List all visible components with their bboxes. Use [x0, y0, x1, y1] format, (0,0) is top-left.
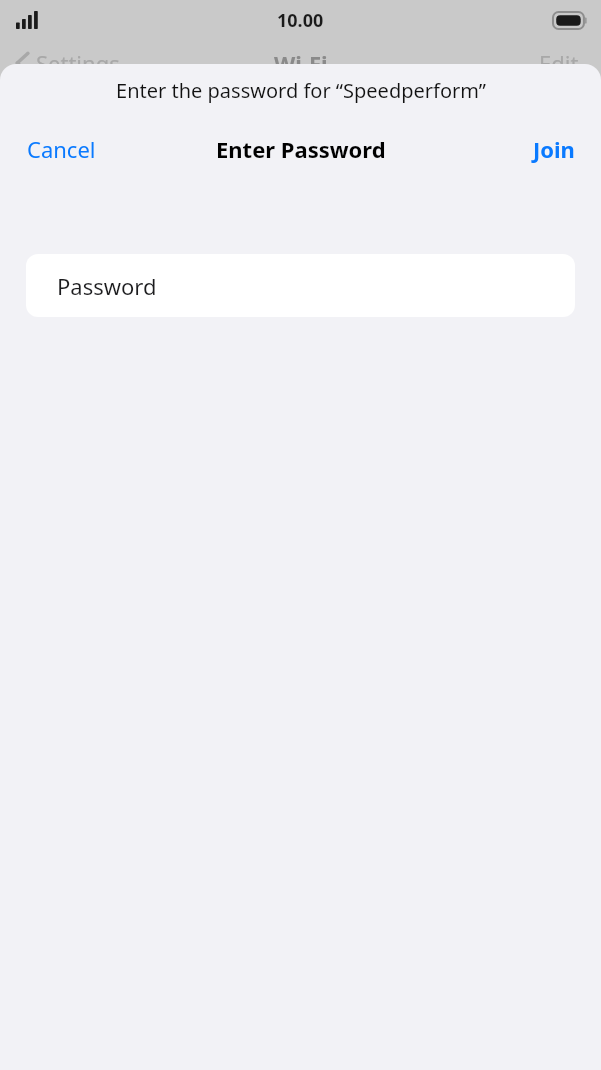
staticText: Enter the password for “Speedperform” [116, 77, 486, 104]
button[interactable]: Settings [10, 44, 601, 82]
staticText: Join [533, 134, 575, 164]
staticText: Enter Password [216, 134, 386, 164]
staticText: Edit [539, 48, 579, 78]
staticText: Settings [36, 48, 120, 78]
staticText: Cancel [27, 134, 96, 164]
button[interactable]: Password [26, 254, 575, 317]
staticText: 10.00 [277, 8, 324, 33]
button[interactable]: Edit [531, 44, 587, 82]
staticText: Wi-Fi [274, 48, 328, 78]
button[interactable]: Join [521, 126, 587, 172]
other: Battery full [553, 12, 587, 29]
staticText: Password [57, 271, 157, 301]
button[interactable]: Cancel [14, 126, 109, 172]
other: Cellular signal [16, 11, 42, 29]
